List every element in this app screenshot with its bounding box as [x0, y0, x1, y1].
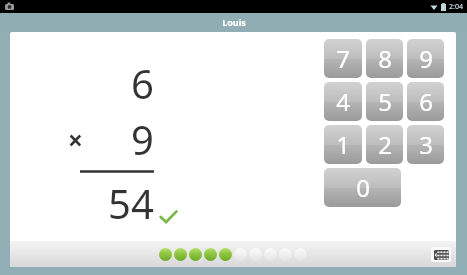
button[interactable]: 7 — [324, 39, 362, 78]
staticText: 6 — [419, 85, 433, 118]
staticText: 2 — [378, 128, 392, 161]
staticText: 4 — [336, 85, 350, 118]
staticText: × — [68, 122, 83, 157]
staticText: 54 — [108, 176, 154, 230]
staticText: 9 — [131, 112, 154, 166]
staticText: 0 — [356, 171, 370, 204]
staticText: 3 — [419, 128, 433, 161]
button[interactable]: 6 — [407, 82, 444, 121]
staticText: 6 — [131, 56, 154, 110]
staticText: Louis — [222, 16, 246, 28]
staticText: 7 — [336, 42, 350, 75]
staticText: 1 — [336, 128, 350, 161]
button[interactable]: 3 — [407, 125, 444, 164]
staticText: 8 — [378, 42, 392, 75]
button[interactable]: 8 — [366, 39, 403, 78]
button[interactable]: 2 — [366, 125, 403, 164]
button[interactable]: 4 — [324, 82, 362, 121]
button[interactable]: 0 — [324, 168, 401, 207]
staticText: 5 — [378, 85, 392, 118]
button[interactable]: 5 — [366, 82, 403, 121]
staticText: 9 — [419, 42, 433, 75]
button[interactable]: 1 — [324, 125, 362, 164]
staticText: 2:04 — [449, 2, 463, 12]
button[interactable]: 9 — [407, 39, 444, 78]
button[interactable]: Show keyboard — [431, 247, 451, 262]
